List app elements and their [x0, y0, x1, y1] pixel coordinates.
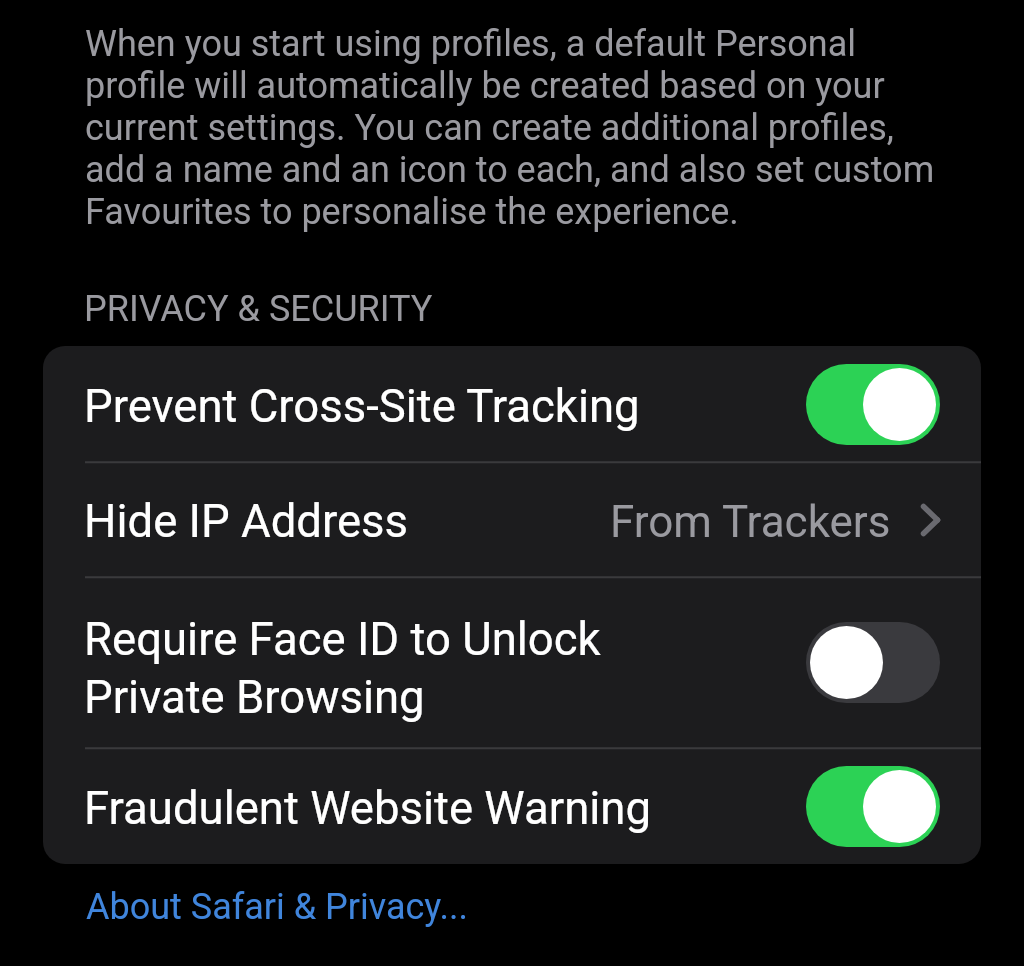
button[interactable]: About Safari & Privacy...: [86, 886, 468, 928]
staticText: PRIVACY & SECURITY: [84, 288, 433, 330]
button[interactable]: Switch on: [806, 766, 940, 847]
staticText: About Safari & Privacy...: [86, 886, 468, 928]
button[interactable]: Require Face ID to Unlock Private Browsi…: [43, 577, 981, 748]
button[interactable]: Prevent Cross-Site Tracking: [43, 346, 981, 462]
staticText: Prevent Cross-Site Tracking: [84, 380, 806, 433]
staticText: Require Face ID to Unlock Private Browsi…: [84, 613, 806, 724]
button[interactable]: Switch off: [806, 622, 940, 703]
staticText: Fraudulent Website Warning: [84, 782, 806, 835]
staticText: From Trackers: [610, 496, 891, 548]
button[interactable]: Hide IP Address: [43, 462, 981, 577]
staticText: Hide IP Address: [84, 495, 610, 548]
button[interactable]: Switch on: [806, 364, 940, 445]
button[interactable]: Fraudulent Website Warning: [43, 748, 981, 864]
staticText: When you start using profiles, a default…: [85, 23, 945, 233]
